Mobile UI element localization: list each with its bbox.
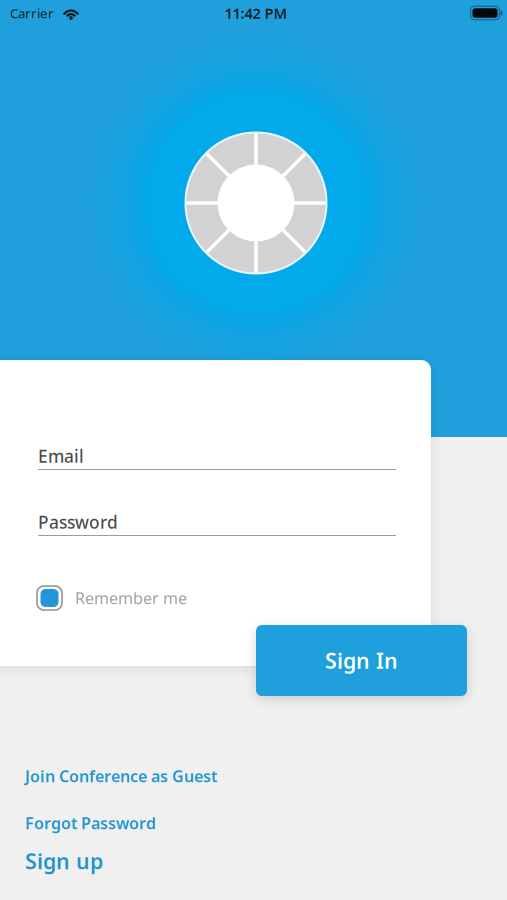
button[interactable]: Join Conference as Guest [25, 762, 295, 790]
staticText: Join Conference as Guest [25, 765, 217, 787]
button[interactable]: Email [38, 446, 396, 470]
staticText: Password [38, 510, 118, 533]
staticText: Sign up [25, 847, 103, 875]
staticText: 11:42 PM [224, 3, 287, 23]
button[interactable]: Sign up [25, 847, 295, 875]
button[interactable]: Password [38, 512, 396, 536]
button[interactable]: Forgot Password [25, 809, 295, 837]
button[interactable]: Remember me [37, 585, 237, 611]
staticText: Carrier [10, 4, 54, 22]
button[interactable]: Sign In [256, 625, 467, 696]
staticText: Forgot Password [25, 812, 156, 834]
staticText: Remember me [75, 587, 187, 609]
staticText: Email [38, 444, 84, 467]
staticText: Sign In [325, 646, 398, 675]
